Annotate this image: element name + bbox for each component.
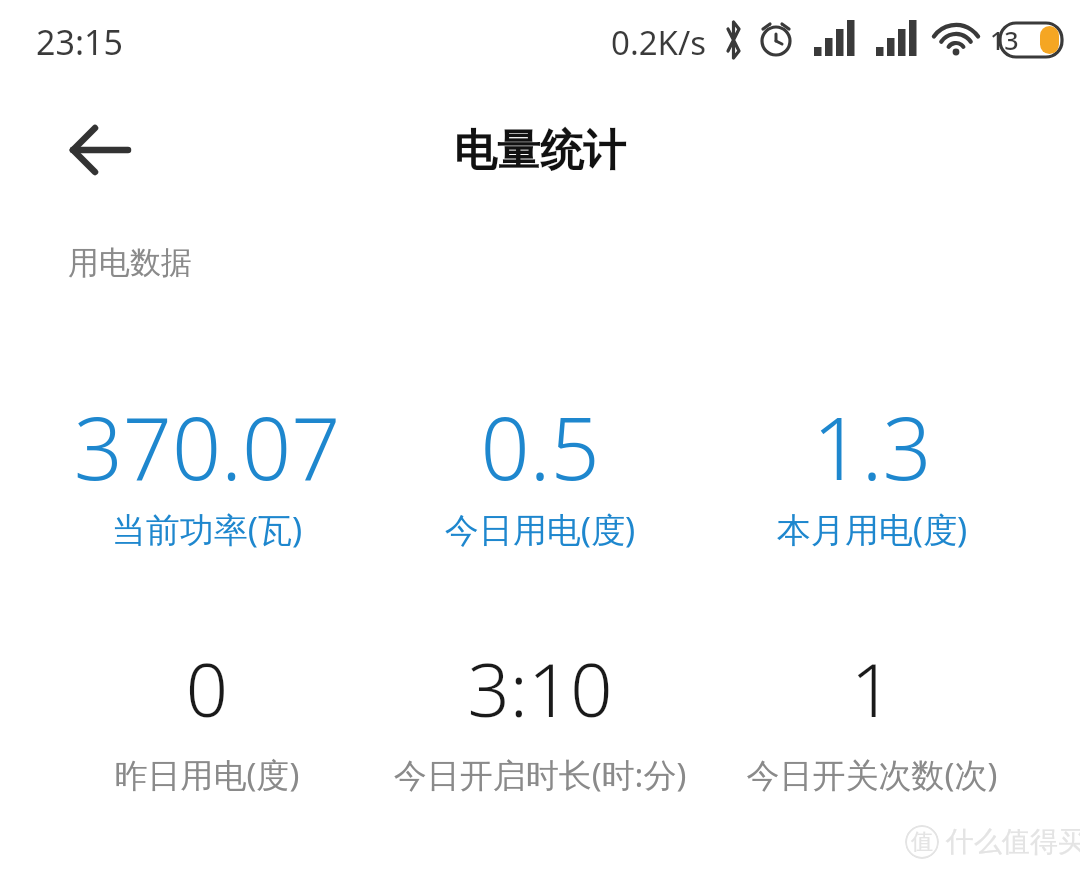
staticText: 1.3 [702, 388, 1042, 505]
staticText: 什么值得买 [946, 824, 1080, 859]
staticText: 0.2K/s [611, 20, 707, 65]
staticText: 23:15 [36, 19, 123, 65]
staticText: 电量统计 [0, 124, 1080, 178]
staticText: 今日用电(度) [370, 506, 710, 552]
staticText: 3:10 [370, 638, 710, 739]
staticText: 今日开启时长(时:分) [370, 752, 710, 797]
staticText: 0 [37, 638, 377, 739]
staticText: 昨日用电(度) [37, 752, 377, 797]
staticText: 1 [702, 638, 1042, 739]
staticText: 0.5 [370, 388, 710, 505]
button[interactable]: 0.5 [370, 388, 710, 555]
staticText: 值 [911, 828, 933, 856]
button[interactable]: Back [46, 106, 134, 194]
button[interactable]: 3:10 [370, 638, 710, 800]
staticText: 本月用电(度) [702, 506, 1042, 552]
button[interactable]: 370.07 [37, 388, 377, 555]
button[interactable]: 0 [37, 638, 377, 800]
staticText: 370.07 [37, 388, 377, 505]
staticText: 今日开关次数(次) [702, 752, 1042, 797]
button[interactable]: 1 [702, 638, 1042, 800]
button[interactable]: 1.3 [702, 388, 1042, 555]
staticText: 用电数据 [68, 243, 192, 282]
staticText: 当前功率(瓦) [37, 506, 377, 552]
staticText: 13 [990, 23, 1019, 57]
